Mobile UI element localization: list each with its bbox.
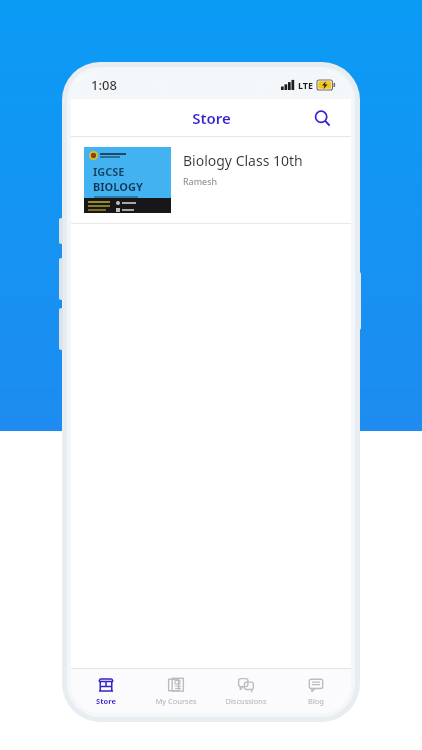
button[interactable]: Blog bbox=[281, 669, 351, 713]
staticText: Store bbox=[96, 696, 116, 706]
staticText: Biology Class 10th bbox=[183, 151, 303, 170]
staticText: Store bbox=[192, 108, 231, 128]
staticText: Ramesh bbox=[183, 175, 218, 187]
button[interactable]: My Courses bbox=[141, 669, 211, 713]
staticText: Discussions bbox=[225, 696, 267, 706]
staticText: My Courses bbox=[155, 696, 197, 706]
staticText: Blog bbox=[308, 696, 324, 706]
button[interactable]: Discussions bbox=[211, 669, 281, 713]
button[interactable]: IGCSE bbox=[71, 137, 351, 224]
button[interactable]: Search bbox=[307, 103, 337, 133]
button[interactable]: Store bbox=[71, 669, 141, 713]
staticText: LTE bbox=[298, 79, 314, 91]
staticText: IGCSE bbox=[93, 164, 125, 179]
staticText: BIOLOGY bbox=[93, 179, 143, 194]
staticText: 1:08 bbox=[91, 76, 117, 94]
